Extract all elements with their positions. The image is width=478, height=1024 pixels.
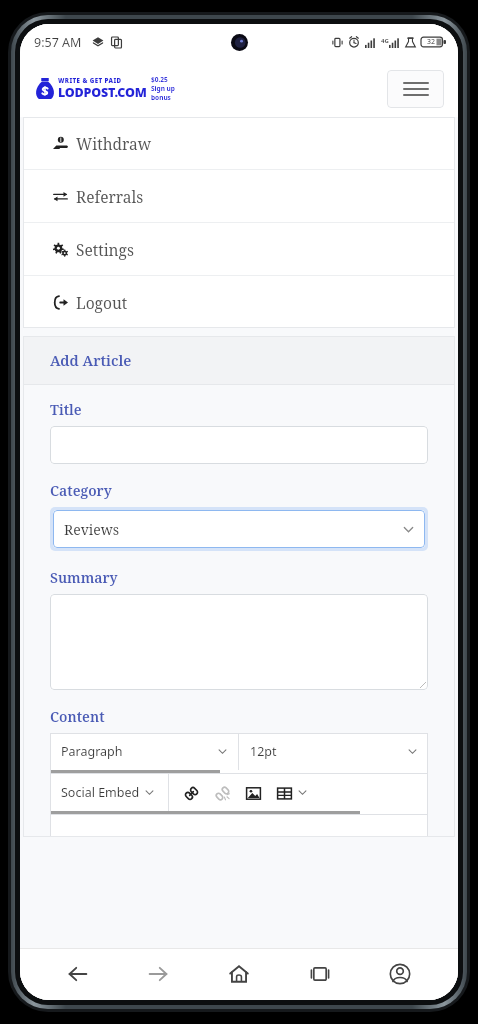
button[interactable]: Settings [23, 223, 455, 275]
staticText: Withdraw [76, 133, 152, 154]
button[interactable]: Forward [135, 951, 181, 997]
button[interactable]: Remove link [209, 780, 235, 806]
button[interactable]: Reviews [53, 510, 425, 548]
button[interactable]: 12pt [239, 733, 428, 770]
staticText: Settings [76, 239, 134, 260]
staticText: 9:57 AM [34, 34, 82, 51]
button[interactable]: Tabs, 44 open [297, 951, 343, 997]
staticText: Category [50, 481, 112, 500]
button[interactable]: Open menu [387, 70, 444, 108]
button[interactable]: Social Embed [50, 774, 168, 811]
button[interactable]: Account [377, 951, 423, 997]
staticText: Sign up [151, 84, 175, 93]
button[interactable]: Insert image [240, 780, 266, 806]
staticText: bonus [151, 93, 171, 102]
button[interactable]: Back [55, 951, 101, 997]
button[interactable]: WRITE & GET PAID [34, 75, 175, 102]
button[interactable]: Insert link [178, 780, 204, 806]
staticText: Add Article [50, 350, 132, 370]
staticText: Social Embed [61, 784, 140, 801]
staticText: WRITE & GET PAID [58, 76, 122, 84]
button[interactable]: Paragraph [50, 733, 238, 770]
staticText: $0.25 [151, 75, 168, 84]
button[interactable]: Referrals [23, 170, 455, 222]
staticText: 32 [427, 37, 436, 47]
staticText: Title [50, 400, 82, 419]
staticText: Summary [50, 568, 118, 587]
button[interactable] [50, 426, 428, 464]
button[interactable]: Home [216, 951, 262, 997]
staticText: 4G [381, 37, 389, 45]
button[interactable]: Logout [23, 276, 455, 328]
staticText: Paragraph [61, 743, 123, 760]
staticText: Reviews [64, 520, 120, 539]
staticText: LODPOST.COM [58, 84, 147, 101]
button[interactable]: Withdraw [23, 117, 455, 169]
staticText: Referrals [76, 186, 144, 207]
staticText: Content [50, 707, 105, 726]
staticText: Logout [76, 292, 128, 313]
button[interactable]: Insert table [271, 780, 297, 806]
button[interactable] [50, 594, 428, 690]
staticText: 12pt [250, 743, 277, 760]
